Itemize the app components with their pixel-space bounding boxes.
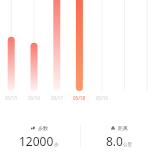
staticText: 12000 [19, 133, 54, 149]
staticText: 05/16 [28, 95, 40, 101]
button[interactable]: 距离 [79, 125, 159, 149]
staticText: 距离 [118, 125, 128, 131]
staticText: 05/19 [96, 95, 108, 101]
other: 步数 [31, 126, 35, 130]
staticText: 8.0 [106, 133, 123, 149]
button[interactable]: 05/18 [67, 95, 91, 101]
other: 距离 [111, 126, 115, 130]
staticText: 步 [54, 142, 59, 148]
button[interactable]: 05/15 [0, 95, 23, 101]
staticText: 05/15 [5, 95, 17, 101]
staticText: 步数 [38, 125, 48, 131]
button[interactable]: 05/16 [22, 95, 46, 101]
staticText: 公里 [123, 142, 133, 148]
button[interactable]: 步数 [0, 125, 79, 149]
button[interactable]: 05/17 [45, 95, 69, 101]
button[interactable]: 05/19 [90, 95, 114, 101]
staticText: 05/18 [73, 95, 85, 101]
staticText: 05/17 [51, 95, 63, 101]
